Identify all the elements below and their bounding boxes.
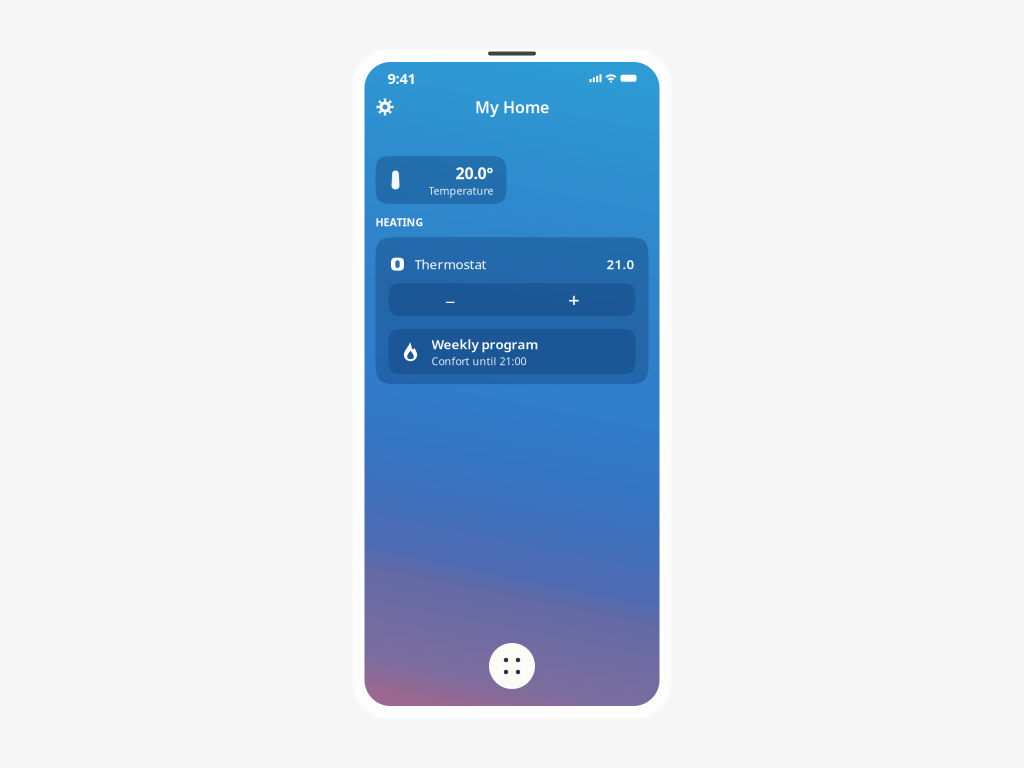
staticText: My Home [475, 96, 549, 118]
staticText: – [445, 286, 455, 313]
button[interactable]: Decrease temperature [388, 283, 512, 316]
staticText: Temperature [428, 183, 493, 198]
staticText: 9:41 [387, 68, 415, 88]
staticText: Weekly program [431, 335, 538, 353]
staticText: 21.0 [606, 255, 634, 273]
button[interactable]: Increase temperature [512, 283, 635, 316]
button[interactable]: Settings [369, 91, 400, 122]
staticText: + [568, 286, 579, 313]
button[interactable]: 20.0° [375, 156, 506, 204]
button[interactable]: Weekly program [388, 329, 635, 374]
button[interactable]: All devices [489, 643, 535, 689]
staticText: HEATING [375, 215, 423, 229]
staticText: 20.0° [455, 162, 493, 183]
staticText: Confort until 21:00 [431, 354, 526, 368]
staticText: Thermostat [414, 255, 486, 273]
